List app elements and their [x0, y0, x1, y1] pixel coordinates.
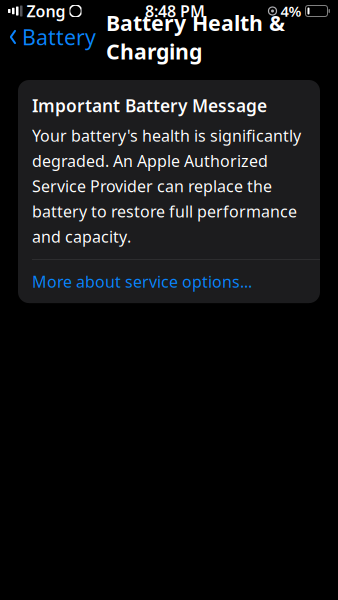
staticText: Your battery's health is significantly d…: [32, 125, 301, 247]
staticText: Battery Health & Charging: [106, 9, 285, 65]
staticText: Battery: [22, 23, 96, 51]
button[interactable]: More about service options...: [18, 260, 320, 303]
staticText: Zong: [26, 0, 65, 22]
staticText: Important Battery Message: [32, 94, 267, 117]
staticText: 4%: [280, 1, 301, 21]
button[interactable]: Battery: [0, 17, 96, 57]
staticText: 8:48 PM: [145, 0, 205, 22]
staticText: More about service options...: [32, 271, 252, 292]
